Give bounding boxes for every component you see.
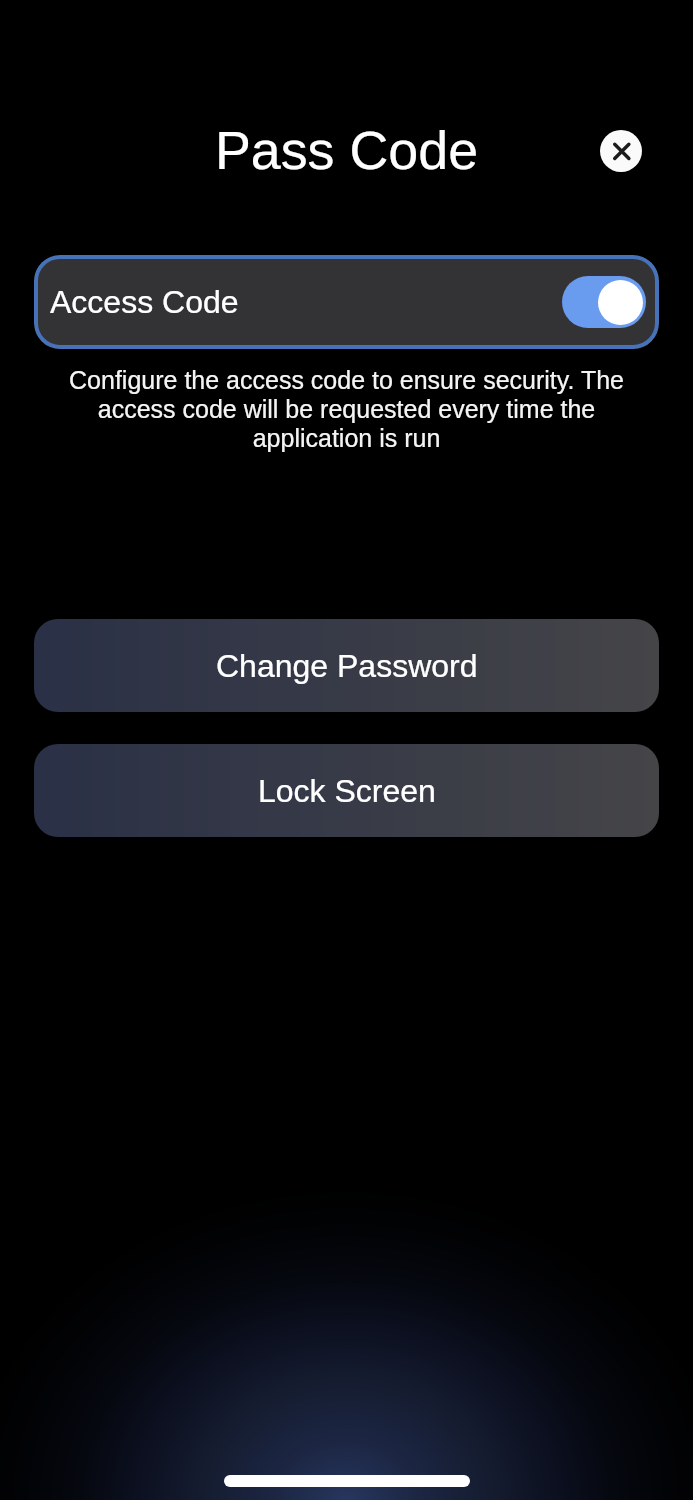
button[interactable]: Access Code: [34, 255, 659, 349]
staticText: Change Password: [216, 648, 478, 684]
button[interactable]: Access Code toggle: [562, 276, 646, 328]
staticText: Pass Code: [0, 120, 693, 180]
staticText: Access Code: [50, 284, 239, 320]
button[interactable]: Lock Screen: [34, 744, 659, 837]
button[interactable]: Change Password: [34, 619, 659, 712]
staticText: Lock Screen: [258, 773, 436, 809]
staticText: Configure the access code to ensure secu…: [55, 366, 638, 452]
button[interactable]: Close: [600, 130, 642, 172]
